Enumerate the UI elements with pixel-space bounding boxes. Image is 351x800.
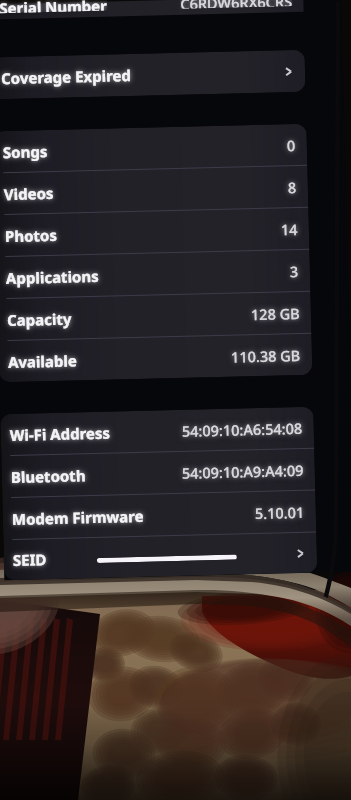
staticText: Songs xyxy=(3,141,48,162)
staticText: 8 xyxy=(288,177,297,197)
staticText: Wi-Fi Address xyxy=(10,423,111,445)
staticText: Available xyxy=(8,350,77,372)
staticText: 3 xyxy=(290,261,299,281)
staticText: Videos xyxy=(4,183,54,204)
staticText: 8 xyxy=(288,177,297,197)
button[interactable]: Wi-Fi Address xyxy=(0,407,314,455)
staticText: Available xyxy=(8,350,77,372)
staticText: Coverage Expired xyxy=(1,65,131,88)
staticText: 110.38 GB xyxy=(231,345,301,367)
button[interactable]: Bluetooth xyxy=(1,449,315,497)
staticText: Modem Firmware xyxy=(12,506,144,529)
staticText: Bluetooth xyxy=(11,465,86,487)
button[interactable]: Songs xyxy=(0,124,307,172)
button[interactable]: SEID xyxy=(3,533,317,580)
button[interactable]: Photos xyxy=(0,208,309,256)
staticText: 54:09:10:A9:A4:09 xyxy=(181,460,304,483)
staticText: Coverage Expired xyxy=(1,65,131,88)
staticText: 54:09:10:A9:A4:09 xyxy=(181,460,304,483)
staticText: Modem Firmware xyxy=(12,506,144,529)
staticText: 128 GB xyxy=(251,303,300,324)
staticText: 128 GB xyxy=(251,303,300,324)
staticText: 5.10.01 xyxy=(254,502,305,523)
button[interactable]: Capacity xyxy=(0,292,311,340)
button[interactable]: Modem Firmware xyxy=(2,491,316,539)
staticText: Bluetooth xyxy=(11,465,86,487)
staticText: Serial Number xyxy=(0,0,107,13)
staticText: 14 xyxy=(281,219,298,239)
staticText: Applications xyxy=(6,266,99,288)
staticText: Capacity xyxy=(7,308,72,330)
staticText: Wi-Fi Address xyxy=(10,423,111,445)
staticText: SEID xyxy=(13,549,47,570)
staticText: Serial Number xyxy=(0,0,107,13)
staticText: C6RDW6RX6CRS xyxy=(180,0,292,9)
staticText: 54:09:10:A6:54:08 xyxy=(181,418,303,441)
staticText: 0 xyxy=(287,135,296,155)
staticText: 5.10.01 xyxy=(254,502,305,523)
staticText: Songs xyxy=(3,141,48,162)
staticText: 110.38 GB xyxy=(231,345,301,367)
staticText: Applications xyxy=(6,266,99,288)
button[interactable]: Available xyxy=(0,334,312,382)
staticText: C6RDW6RX6CRS xyxy=(180,0,292,9)
other: More xyxy=(295,548,306,559)
staticText: 0 xyxy=(287,135,296,155)
staticText: Capacity xyxy=(7,308,72,330)
staticText: Photos xyxy=(5,225,57,246)
staticText: Videos xyxy=(4,183,54,204)
staticText: 3 xyxy=(290,261,299,281)
button[interactable]: Applications xyxy=(0,250,310,298)
other: More xyxy=(283,66,294,77)
button[interactable]: Coverage Expired xyxy=(0,50,305,99)
staticText: 14 xyxy=(281,219,298,239)
staticText: 54:09:10:A6:54:08 xyxy=(181,418,303,441)
staticText: SEID xyxy=(13,549,47,570)
button[interactable]: Videos xyxy=(0,166,308,214)
staticText: Photos xyxy=(5,225,57,246)
